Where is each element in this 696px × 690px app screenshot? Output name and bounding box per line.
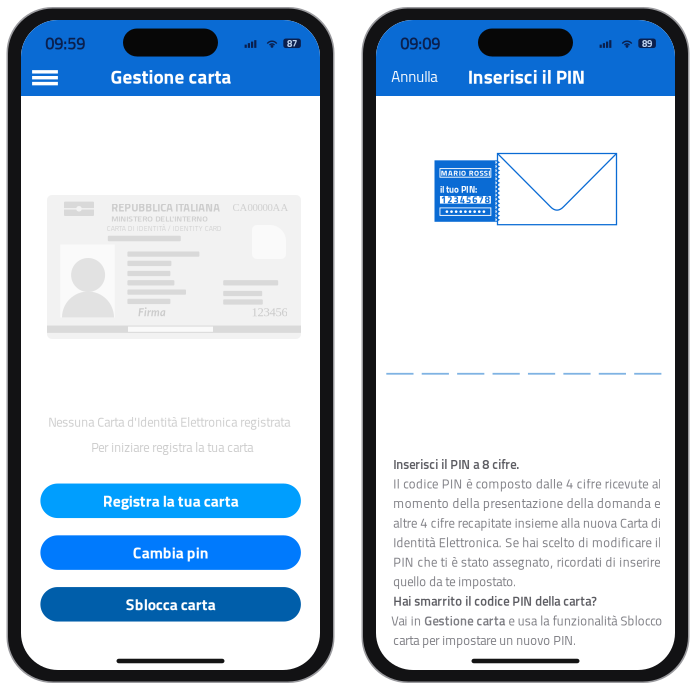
staticText: REPUBBLICA ITALIANA bbox=[111, 199, 220, 216]
staticText: Cambia pin bbox=[133, 541, 209, 564]
staticText: Il codice PIN è composto dalle 4 cifre r… bbox=[393, 474, 661, 493]
staticText: 09:59 bbox=[45, 31, 85, 56]
staticText: Nessuna Carta d'Identità Elettronica reg… bbox=[48, 412, 290, 432]
staticText: PIN che ti è stato assegnato, ricordati … bbox=[393, 552, 660, 572]
staticText: carta per impostare un nuovo PIN. bbox=[393, 630, 576, 650]
staticText: MINISTERO DELL'INTERNO bbox=[111, 212, 208, 225]
staticText: il tuo PIN: bbox=[440, 182, 477, 196]
staticText: quello da te impostato. bbox=[393, 572, 516, 591]
staticText: Firma bbox=[138, 305, 166, 318]
staticText: Sblocca carta bbox=[126, 592, 216, 616]
staticText: momento della presentazione della domand… bbox=[393, 494, 660, 513]
staticText: CARTA DI IDENTITÀ / IDENTITY CARD bbox=[107, 223, 222, 234]
staticText: Annulla bbox=[391, 65, 438, 88]
staticText: MARIO ROSSI bbox=[441, 167, 490, 179]
staticText: 89 bbox=[642, 36, 652, 51]
staticText: Hai smarrito il codice PIN della carta? bbox=[393, 591, 597, 611]
staticText: 87 bbox=[287, 36, 297, 51]
button[interactable]: Annulla bbox=[384, 58, 445, 95]
staticText: Identità Elettronica. Se hai scelto di m… bbox=[393, 533, 661, 552]
staticText: 09:09 bbox=[400, 31, 440, 56]
staticText: 123456 bbox=[251, 305, 287, 319]
staticText: Registra la tua carta bbox=[103, 489, 239, 513]
staticText: altre 4 cifre recapitate insieme alla nu… bbox=[393, 513, 661, 533]
button[interactable]: Cambia pin bbox=[40, 535, 301, 570]
button[interactable]: Menu bbox=[23, 61, 67, 94]
staticText: Gestione carta bbox=[110, 62, 231, 91]
staticText: Per iniziare registra la tua carta bbox=[91, 438, 253, 457]
staticText: Inserisci il PIN bbox=[468, 62, 585, 91]
staticText: Vai in Gestione carta e usa la funzional… bbox=[391, 611, 662, 630]
staticText: 12345678 bbox=[441, 193, 490, 207]
button[interactable]: Registra la tua carta bbox=[40, 484, 301, 518]
staticText: Inserisci il PIN a 8 cifre. bbox=[393, 455, 519, 474]
staticText: CA00000AA bbox=[232, 202, 288, 213]
button[interactable]: Sblocca carta bbox=[40, 587, 301, 621]
